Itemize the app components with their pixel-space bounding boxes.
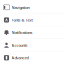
staticText: Navigation <box>12 5 30 10</box>
staticText: Fonts & Text <box>12 17 33 23</box>
button[interactable]: Accounts <box>0 39 64 51</box>
staticText: Notifications <box>12 30 33 35</box>
button[interactable]: Notifications <box>0 26 64 39</box>
button[interactable]: Fonts & Text <box>0 14 64 26</box>
button[interactable]: Navigation <box>0 1 64 14</box>
button[interactable]: Advanced <box>0 51 64 64</box>
staticText: Accounts <box>12 42 28 48</box>
staticText: Advanced <box>12 55 29 60</box>
